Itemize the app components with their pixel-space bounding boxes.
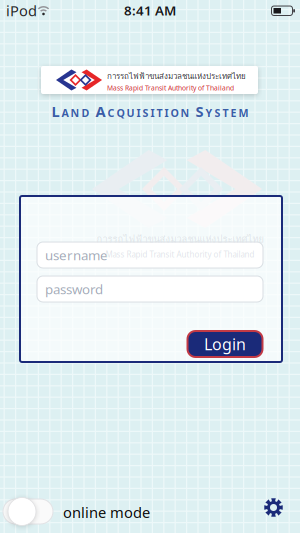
staticText: Mass Rapid Transit Authority of Thailand xyxy=(107,83,234,92)
staticText: 8:41 AM xyxy=(124,1,176,19)
staticText: password xyxy=(45,280,103,298)
staticText: การรถไฟฟ้าขนส่งมวลชนแห่งประเทศไทย xyxy=(107,70,246,82)
button[interactable]: password xyxy=(37,276,263,302)
staticText: online mode xyxy=(63,502,150,522)
button[interactable]: online mode xyxy=(3,499,53,524)
staticText: username xyxy=(45,246,108,264)
staticText: iPod xyxy=(6,1,37,20)
button[interactable]: Settings xyxy=(264,498,283,517)
staticText: Mass Rapid Transit Authority of Thailand xyxy=(105,249,254,260)
staticText: การรถไฟฟ้าขนส่งมวลชนแห่งประเทศไทย xyxy=(96,232,263,246)
button[interactable]: username xyxy=(37,242,263,268)
staticText: L A N D A C Q U I S I T I O N S Y S T E … xyxy=(51,101,248,121)
button[interactable]: Login xyxy=(187,331,262,357)
staticText: Login xyxy=(204,333,246,355)
